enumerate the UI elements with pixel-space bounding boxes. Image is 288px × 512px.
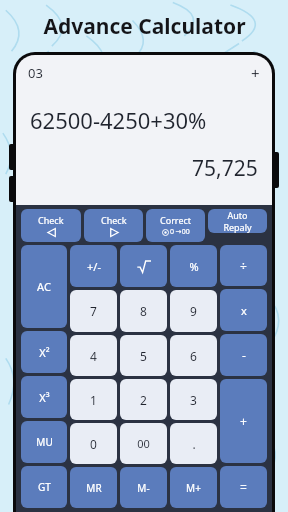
button[interactable]: x (220, 289, 267, 331)
staticText: x (241, 303, 247, 318)
staticText: 62500-4250+30% (30, 105, 207, 135)
staticText: Check (101, 214, 127, 226)
staticText: Auto Repaly (223, 209, 252, 233)
button[interactable]: 2 (120, 379, 167, 420)
button[interactable]: Check next (84, 209, 143, 242)
staticText: MR (86, 481, 102, 495)
staticText: 5 (140, 348, 147, 364)
staticText: 0 →00 (170, 227, 190, 237)
button[interactable]: . (170, 423, 217, 464)
staticText: GT (38, 480, 51, 494)
button[interactable]: Square root (120, 245, 167, 287)
button[interactable]: 9 (170, 290, 217, 332)
staticText: X² (39, 345, 50, 360)
staticText: + (240, 413, 247, 429)
button[interactable]: 8 (120, 290, 167, 332)
button[interactable]: = (220, 466, 267, 508)
staticText: + (251, 63, 260, 83)
button[interactable]: 0 (70, 423, 117, 464)
button[interactable]: 5 (120, 335, 167, 376)
button[interactable]: + (220, 379, 267, 463)
staticText: 9 (190, 303, 197, 319)
button[interactable]: Correct (146, 209, 205, 242)
staticText: 7 (90, 303, 97, 319)
button[interactable]: % (170, 245, 217, 287)
staticText: MU (36, 435, 53, 449)
button[interactable]: 7 (70, 290, 117, 332)
staticText: Correct (160, 214, 192, 226)
staticText: 75,725 (192, 154, 258, 183)
staticText: 8 (140, 303, 147, 319)
button[interactable]: MR (70, 467, 117, 508)
button[interactable]: M- (120, 467, 167, 508)
button[interactable]: - (220, 334, 267, 376)
button[interactable]: MU (21, 421, 67, 463)
staticText: 4 (90, 348, 97, 364)
staticText: % (189, 259, 199, 274)
staticText: 00 (137, 436, 150, 451)
staticText: M- (137, 481, 150, 495)
staticText: Advance Calculator (43, 12, 246, 41)
staticText: Check (38, 214, 64, 226)
button[interactable]: 00 (120, 423, 167, 464)
button[interactable]: 3 (170, 379, 217, 420)
staticText: M+ (186, 481, 201, 495)
button[interactable]: GT (21, 466, 67, 508)
staticText: +/- (87, 259, 101, 274)
staticText: AC (37, 279, 51, 294)
button[interactable]: Auto Repaly (208, 209, 267, 233)
staticText: = (240, 479, 247, 495)
button[interactable]: X³ (21, 376, 67, 418)
staticText: 1 (90, 392, 97, 408)
staticText: X³ (39, 390, 50, 405)
button[interactable]: AC (21, 245, 67, 328)
button[interactable]: +/- (70, 245, 117, 287)
staticText: 03 (28, 64, 43, 82)
staticText: ÷ (240, 258, 247, 274)
staticText: - (242, 347, 246, 363)
staticText: 6 (190, 348, 197, 364)
staticText: 3 (190, 392, 197, 408)
button[interactable]: 1 (70, 379, 117, 420)
button[interactable]: 4 (70, 335, 117, 376)
staticText: . (192, 436, 196, 452)
staticText: 0 (90, 436, 97, 452)
button[interactable]: ÷ (220, 245, 267, 286)
staticText: 2 (140, 392, 147, 408)
button[interactable]: Check previous (21, 209, 81, 242)
button[interactable]: X² (21, 331, 67, 373)
button[interactable]: 6 (170, 335, 217, 376)
button[interactable]: M+ (170, 467, 217, 508)
